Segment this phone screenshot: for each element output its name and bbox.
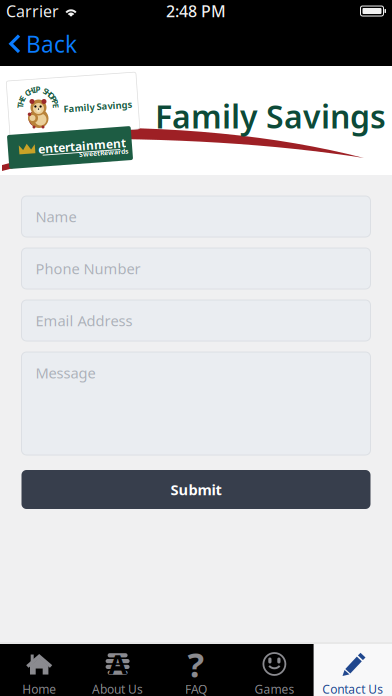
button[interactable]: Contact Us: [314, 644, 392, 696]
staticText: O: [35, 84, 41, 95]
staticText: Submit: [170, 480, 221, 499]
staticText: Family Savings: [155, 95, 386, 137]
staticText: I: [36, 84, 39, 95]
button[interactable]: Submit: [21, 470, 370, 509]
staticText: Family Savings: [63, 100, 132, 113]
staticText: entertainment: [38, 138, 126, 154]
staticText: A: [109, 646, 127, 682]
staticText: Message: [35, 363, 95, 382]
staticText: P: [35, 84, 40, 95]
button[interactable]: Home: [0, 644, 78, 696]
staticText: [37, 84, 39, 95]
staticText: 2:48 PM: [166, 0, 226, 22]
staticText: Carrier: [6, 0, 59, 22]
staticText: FAQ: [185, 681, 207, 696]
staticText: Games: [254, 681, 294, 696]
staticText: C: [35, 84, 40, 95]
staticText: H: [35, 84, 41, 95]
staticText: About Us: [92, 681, 143, 696]
button[interactable]: Games: [235, 644, 314, 696]
staticText: Email Address: [35, 311, 132, 330]
staticText: Phone Number: [35, 259, 140, 278]
staticText: Back: [26, 29, 77, 59]
staticText: E: [36, 84, 40, 95]
staticText: H: [35, 84, 41, 95]
staticText: E: [36, 84, 40, 95]
staticText: S: [36, 84, 40, 95]
staticText: Home: [22, 681, 56, 696]
staticText: ?: [187, 641, 204, 687]
button[interactable]: Back: [0, 22, 89, 66]
staticText: T: [35, 84, 40, 95]
staticText: Contact Us: [322, 681, 383, 696]
button[interactable]: A: [78, 644, 157, 696]
staticText: SweetRewards: [78, 151, 127, 159]
staticText: [37, 84, 39, 95]
staticText: P: [35, 84, 40, 95]
button[interactable]: ?: [157, 644, 235, 696]
staticText: Name: [35, 207, 76, 226]
staticText: P: [35, 84, 40, 95]
staticText: H: [35, 84, 41, 95]
